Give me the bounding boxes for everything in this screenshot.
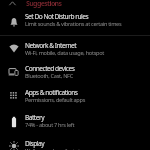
staticText: Set Do Not Disturb rules — [25, 12, 89, 21]
button[interactable]: Suggestions — [0, 0, 150, 9]
button[interactable]: Battery — [0, 110, 150, 136]
staticText: Apps & notifications — [25, 88, 78, 97]
button[interactable]: Apps & notifications — [0, 85, 150, 110]
staticText: 74% - about 7 hrs left — [25, 121, 75, 129]
staticText: Wi-Fi, mobile, data usage, hotspot — [25, 49, 104, 57]
button[interactable]: Set Do Not Disturb rules — [0, 9, 150, 34]
button[interactable]: Network & Internet — [0, 38, 150, 61]
button[interactable]: Connected devices — [0, 61, 150, 85]
staticText: Bluetooth, Cast, NFC — [25, 72, 73, 80]
staticText: Limit sounds & vibrations at certain tim… — [25, 20, 122, 28]
staticText: Suggestions — [26, 0, 62, 8]
staticText: Battery — [25, 113, 45, 122]
button[interactable]: Display — [0, 136, 150, 150]
staticText: Permissions, default apps — [25, 96, 86, 104]
staticText: Wallpaper, sleep, font size — [25, 147, 85, 150]
staticText: Connected devices — [25, 64, 75, 73]
staticText: Network & Internet — [25, 41, 77, 50]
staticText: Display — [25, 139, 44, 148]
